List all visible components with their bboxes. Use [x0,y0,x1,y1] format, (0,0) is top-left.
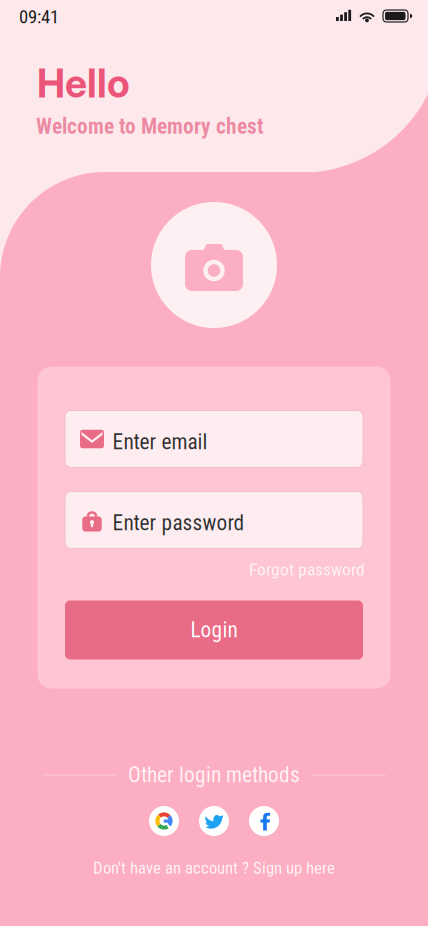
staticText: Enter email [112,429,207,454]
button[interactable]: Enter email [65,410,363,467]
button[interactable]: Login [65,600,363,659]
button[interactable]: Sign in with Google [149,806,179,836]
staticText: Welcome to Memory chest [36,114,264,139]
button[interactable]: Forgot password [65,548,363,600]
staticText: 09:41 [19,6,59,28]
button[interactable]: Enter password [65,491,363,548]
staticText: Don't have an account ? Sign up here [93,858,335,878]
staticText: Hello [37,60,130,107]
button[interactable]: Sign in with Facebook [249,806,279,836]
button[interactable]: Sign in with Twitter [199,806,229,836]
button[interactable]: Don't have an account ? Sign up here [0,855,428,881]
staticText: Other login methods [128,762,300,787]
staticText: Forgot password [249,559,365,580]
staticText: Enter password [112,510,244,535]
staticText: Login [190,617,237,642]
